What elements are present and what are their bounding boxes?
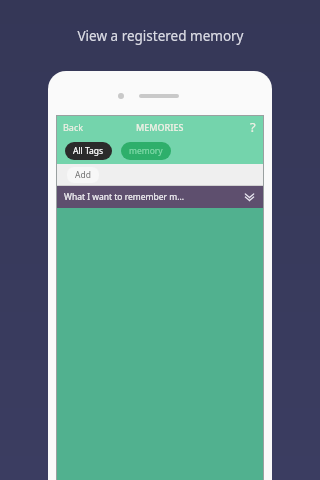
staticText: Add — [75, 169, 91, 181]
other: Expand — [244, 192, 255, 203]
button[interactable]: What I want to remember m... — [57, 186, 263, 208]
staticText: What I want to remember m... — [64, 191, 244, 203]
staticText: ? — [250, 118, 256, 136]
button[interactable]: Back — [57, 116, 90, 137]
staticText: Back — [63, 121, 84, 133]
staticText: memory — [129, 145, 163, 157]
button[interactable]: Help — [243, 116, 263, 137]
staticText: All Tags — [73, 145, 104, 157]
staticText: MEMORIES — [136, 121, 184, 133]
button[interactable]: memory — [121, 142, 171, 160]
button[interactable]: Add — [67, 167, 99, 183]
button[interactable]: All Tags — [65, 142, 112, 160]
staticText: View a registered memory — [77, 27, 244, 45]
